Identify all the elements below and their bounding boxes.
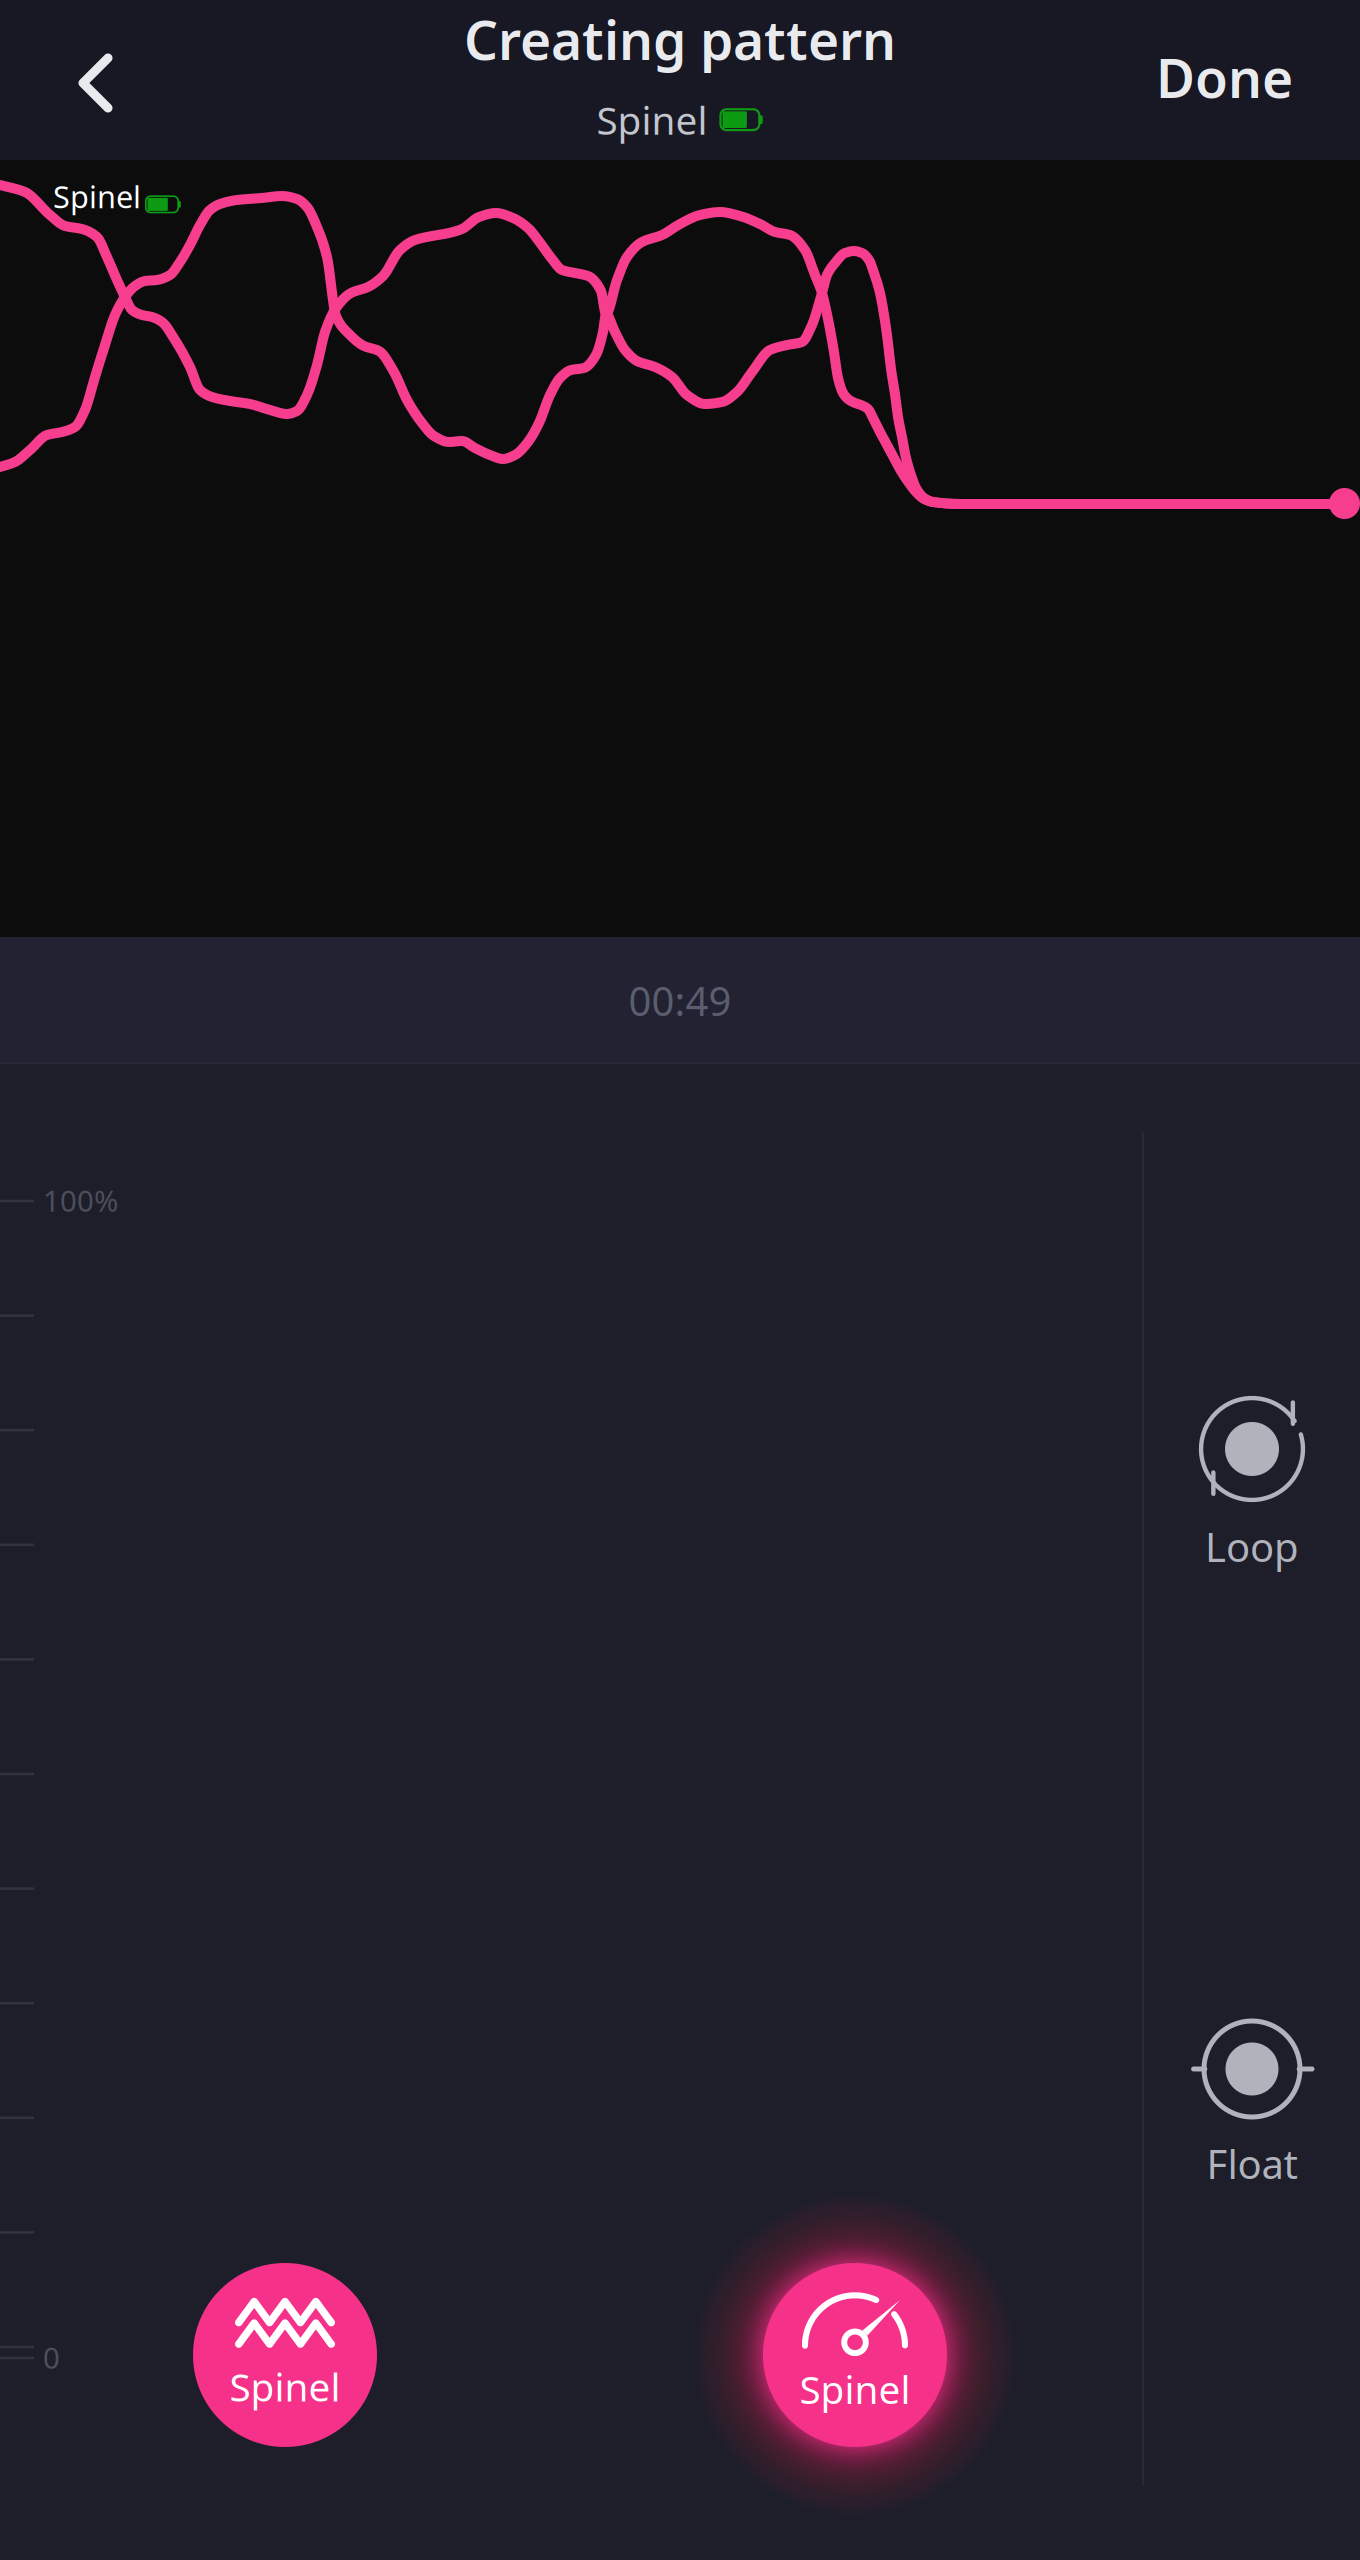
staticText: 0 (43, 2338, 60, 2377)
staticText: Done (1156, 42, 1293, 113)
staticText: 100% (43, 1181, 118, 1220)
staticText: Spinel (53, 176, 141, 217)
staticText: Loop (1205, 1520, 1299, 1573)
button[interactable]: Spinel (763, 2263, 947, 2447)
staticText: 00:49 (628, 974, 731, 1027)
staticText: Spinel (229, 2361, 340, 2412)
button[interactable]: Spinel (193, 2263, 377, 2447)
button[interactable]: Loop (1144, 1393, 1360, 1573)
button[interactable]: Back (36, 13, 156, 153)
staticText: Spinel (799, 2363, 910, 2415)
button[interactable]: Done (1112, 4, 1337, 151)
staticText: Creating pattern (464, 4, 896, 75)
staticText: Spinel (596, 94, 707, 145)
button[interactable]: Float (1144, 2016, 1360, 2190)
staticText: Float (1206, 2137, 1297, 2190)
